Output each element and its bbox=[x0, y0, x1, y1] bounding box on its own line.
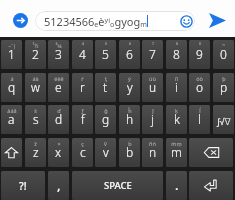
button[interactable]: g bbox=[95, 105, 116, 134]
button[interactable]: Enter bbox=[189, 171, 233, 200]
staticText: 2 bbox=[32, 46, 39, 62]
button[interactable]: j bbox=[142, 105, 163, 134]
staticText: l bbox=[198, 111, 201, 127]
button[interactable]: SPACE bbox=[72, 171, 163, 200]
button[interactable]: w bbox=[25, 73, 46, 102]
staticText: þ bbox=[222, 75, 226, 82]
staticText: ĥ bbox=[128, 107, 132, 114]
staticText: h bbox=[126, 111, 134, 127]
button[interactable]: 6 bbox=[119, 40, 140, 69]
button[interactable]: 8 bbox=[166, 40, 187, 69]
button[interactable]: b bbox=[119, 138, 140, 167]
button[interactable]: 1 bbox=[1, 40, 22, 69]
staticText: . bbox=[175, 176, 179, 194]
staticText: ⁵ bbox=[105, 42, 107, 49]
button[interactable]: i bbox=[166, 73, 187, 102]
staticText: s bbox=[33, 111, 39, 127]
staticText: y bbox=[127, 79, 133, 95]
staticText: 4 bbox=[79, 46, 86, 62]
button[interactable]: ?! bbox=[1, 171, 45, 200]
staticText: ³¾ bbox=[55, 42, 62, 49]
button[interactable]: . bbox=[166, 171, 187, 200]
staticText: 51234566ₑèʸⁱₒgyogₘ bbox=[44, 14, 147, 29]
staticText: á bbox=[10, 75, 14, 82]
staticText: ṁṃ bbox=[171, 140, 182, 147]
button[interactable]: ∫√∇ bbox=[213, 105, 234, 134]
staticText: x bbox=[55, 144, 62, 160]
button[interactable]: z bbox=[25, 138, 46, 167]
button[interactable]: d bbox=[48, 105, 69, 134]
staticText: r bbox=[80, 79, 85, 95]
staticText: × bbox=[57, 140, 61, 147]
button[interactable]: Backspace bbox=[189, 138, 233, 167]
staticText: , bbox=[57, 176, 61, 194]
button[interactable]: r bbox=[72, 73, 93, 102]
button[interactable]: a bbox=[1, 105, 22, 134]
button[interactable]: e bbox=[48, 73, 69, 102]
staticText: ṽ bbox=[104, 140, 107, 147]
button[interactable]: Go bbox=[13, 13, 28, 28]
button[interactable]: Send bbox=[209, 13, 226, 28]
staticText: w bbox=[31, 79, 40, 95]
button[interactable]: n bbox=[142, 138, 163, 167]
staticText: c bbox=[80, 144, 86, 160]
button[interactable]: c bbox=[72, 138, 93, 167]
staticText: ĵ bbox=[152, 107, 154, 114]
button[interactable]: 51234566ₑèʸⁱₒgyogₘ bbox=[35, 11, 195, 31]
staticText: íî bbox=[175, 75, 178, 82]
button[interactable]: o bbox=[189, 73, 210, 102]
button[interactable]: q bbox=[1, 73, 22, 102]
button[interactable]: v bbox=[95, 138, 116, 167]
staticText: d bbox=[55, 111, 63, 127]
button[interactable]: Emoji bbox=[180, 15, 193, 28]
button[interactable]: s bbox=[25, 105, 46, 134]
button[interactable]: 4 bbox=[72, 40, 93, 69]
staticText: b bbox=[126, 144, 134, 160]
staticText: ž bbox=[34, 140, 37, 147]
staticText: k bbox=[174, 111, 180, 127]
staticText: i bbox=[175, 79, 178, 95]
staticText: ý bbox=[128, 75, 131, 82]
staticText: ∫√∇ bbox=[217, 117, 231, 127]
button[interactable]: k bbox=[166, 105, 187, 134]
staticText: f bbox=[81, 111, 85, 127]
button[interactable]: 3 bbox=[48, 40, 69, 69]
button[interactable]: x bbox=[48, 138, 69, 167]
staticText: ⁸ bbox=[176, 42, 178, 49]
staticText: ç bbox=[81, 140, 84, 147]
button[interactable]: 2 bbox=[25, 40, 46, 69]
staticText: ⁶ bbox=[129, 42, 131, 49]
staticText: o bbox=[196, 79, 204, 95]
button[interactable]: , bbox=[48, 171, 69, 200]
staticText: v bbox=[103, 144, 109, 160]
staticText: ŕ bbox=[81, 75, 84, 82]
staticText: ⁿ bbox=[222, 42, 225, 49]
button[interactable]: h bbox=[119, 105, 140, 134]
button[interactable]: f bbox=[72, 105, 93, 134]
button[interactable]: p bbox=[213, 73, 234, 102]
staticText: ď bbox=[57, 107, 61, 114]
button[interactable]: u bbox=[142, 73, 163, 102]
staticText: a bbox=[8, 111, 15, 127]
staticText: 6 bbox=[126, 46, 133, 62]
button[interactable]: t bbox=[95, 73, 116, 102]
staticText: óö bbox=[196, 75, 203, 82]
button[interactable]: 9 bbox=[189, 40, 210, 69]
staticText: ~`| bbox=[8, 42, 16, 49]
button[interactable]: y bbox=[119, 73, 140, 102]
button[interactable]: l bbox=[189, 105, 210, 134]
button[interactable]: 5 bbox=[95, 40, 116, 69]
button[interactable]: m bbox=[166, 138, 187, 167]
staticText: g bbox=[102, 111, 110, 127]
staticText: ñń bbox=[149, 140, 156, 147]
staticText: ¹½ bbox=[32, 42, 39, 49]
button[interactable]: 0 bbox=[213, 40, 234, 69]
staticText: áà bbox=[32, 75, 39, 82]
staticText: u bbox=[149, 79, 157, 95]
staticText: ğ bbox=[104, 107, 108, 114]
staticText: 8 bbox=[173, 46, 180, 62]
button[interactable]: Shift bbox=[1, 138, 22, 167]
staticText: p bbox=[220, 79, 228, 95]
staticText: ƒ bbox=[81, 107, 84, 114]
button[interactable]: 7 bbox=[142, 40, 163, 69]
